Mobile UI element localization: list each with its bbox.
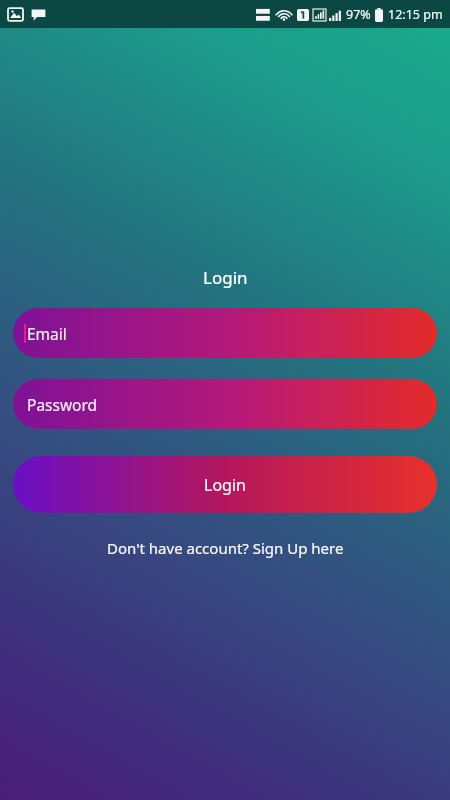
staticText: Password <box>27 394 98 415</box>
staticText: Login <box>204 474 246 496</box>
button[interactable]: Don't have account? Sign Up here <box>0 534 450 562</box>
button[interactable]: Password <box>13 379 437 429</box>
staticText: 12:15 pm <box>388 6 443 23</box>
button[interactable]: Login <box>13 456 437 513</box>
staticText: Don't have account? Sign Up here <box>107 538 344 558</box>
staticText: Email <box>27 323 67 344</box>
staticText: Login <box>203 266 248 289</box>
staticText: 97% <box>346 6 371 23</box>
button[interactable]: Email <box>13 308 437 358</box>
